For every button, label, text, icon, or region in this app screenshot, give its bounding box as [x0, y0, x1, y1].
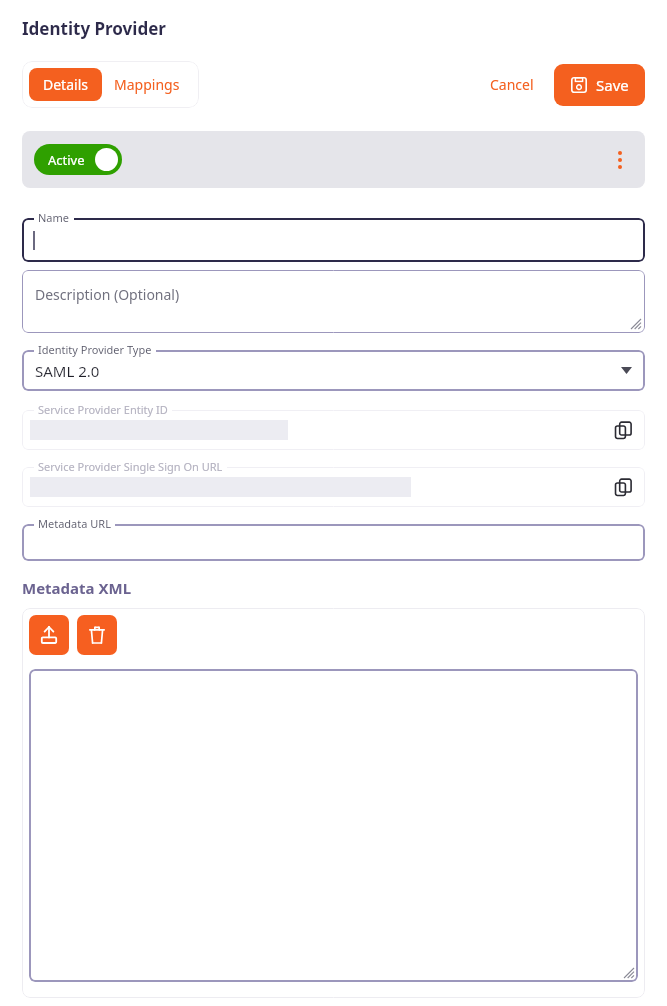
staticText: Mappings: [114, 75, 180, 94]
staticText: Service Provider Single Sign On URL: [38, 459, 223, 474]
button[interactable]: Active: [34, 144, 122, 175]
staticText: Cancel: [490, 75, 534, 94]
button[interactable]: [22, 524, 645, 561]
staticText: Metadata URL: [38, 516, 111, 531]
button[interactable]: Copy Service Provider Single Sign On URL: [614, 478, 633, 497]
staticText: Identity Provider Type: [38, 342, 152, 357]
staticText: Identity Provider: [22, 17, 166, 40]
button[interactable]: [29, 669, 638, 982]
button[interactable]: SAML 2.0: [22, 350, 645, 391]
button[interactable]: Description (Optional): [22, 270, 645, 333]
button[interactable]: Upload XML: [29, 615, 69, 655]
button[interactable]: More options: [607, 147, 633, 173]
staticText: Service Provider Entity ID: [38, 402, 168, 417]
staticText: Description (Optional): [35, 285, 180, 304]
staticText: Save: [596, 75, 629, 95]
staticText: SAML 2.0: [35, 361, 100, 381]
staticText: Metadata XML: [22, 578, 132, 598]
button[interactable]: Delete XML: [77, 615, 117, 655]
button[interactable]: [22, 218, 645, 262]
button[interactable]: Save: [554, 64, 645, 106]
staticText: Details: [43, 75, 88, 94]
button[interactable]: Copy Service Provider Entity ID: [614, 421, 633, 440]
staticText: Active: [48, 151, 85, 169]
button[interactable]: Cancel: [480, 67, 544, 102]
button[interactable]: Mappings: [102, 68, 192, 101]
button[interactable]: Details: [29, 68, 102, 101]
staticText: Name: [38, 210, 70, 225]
